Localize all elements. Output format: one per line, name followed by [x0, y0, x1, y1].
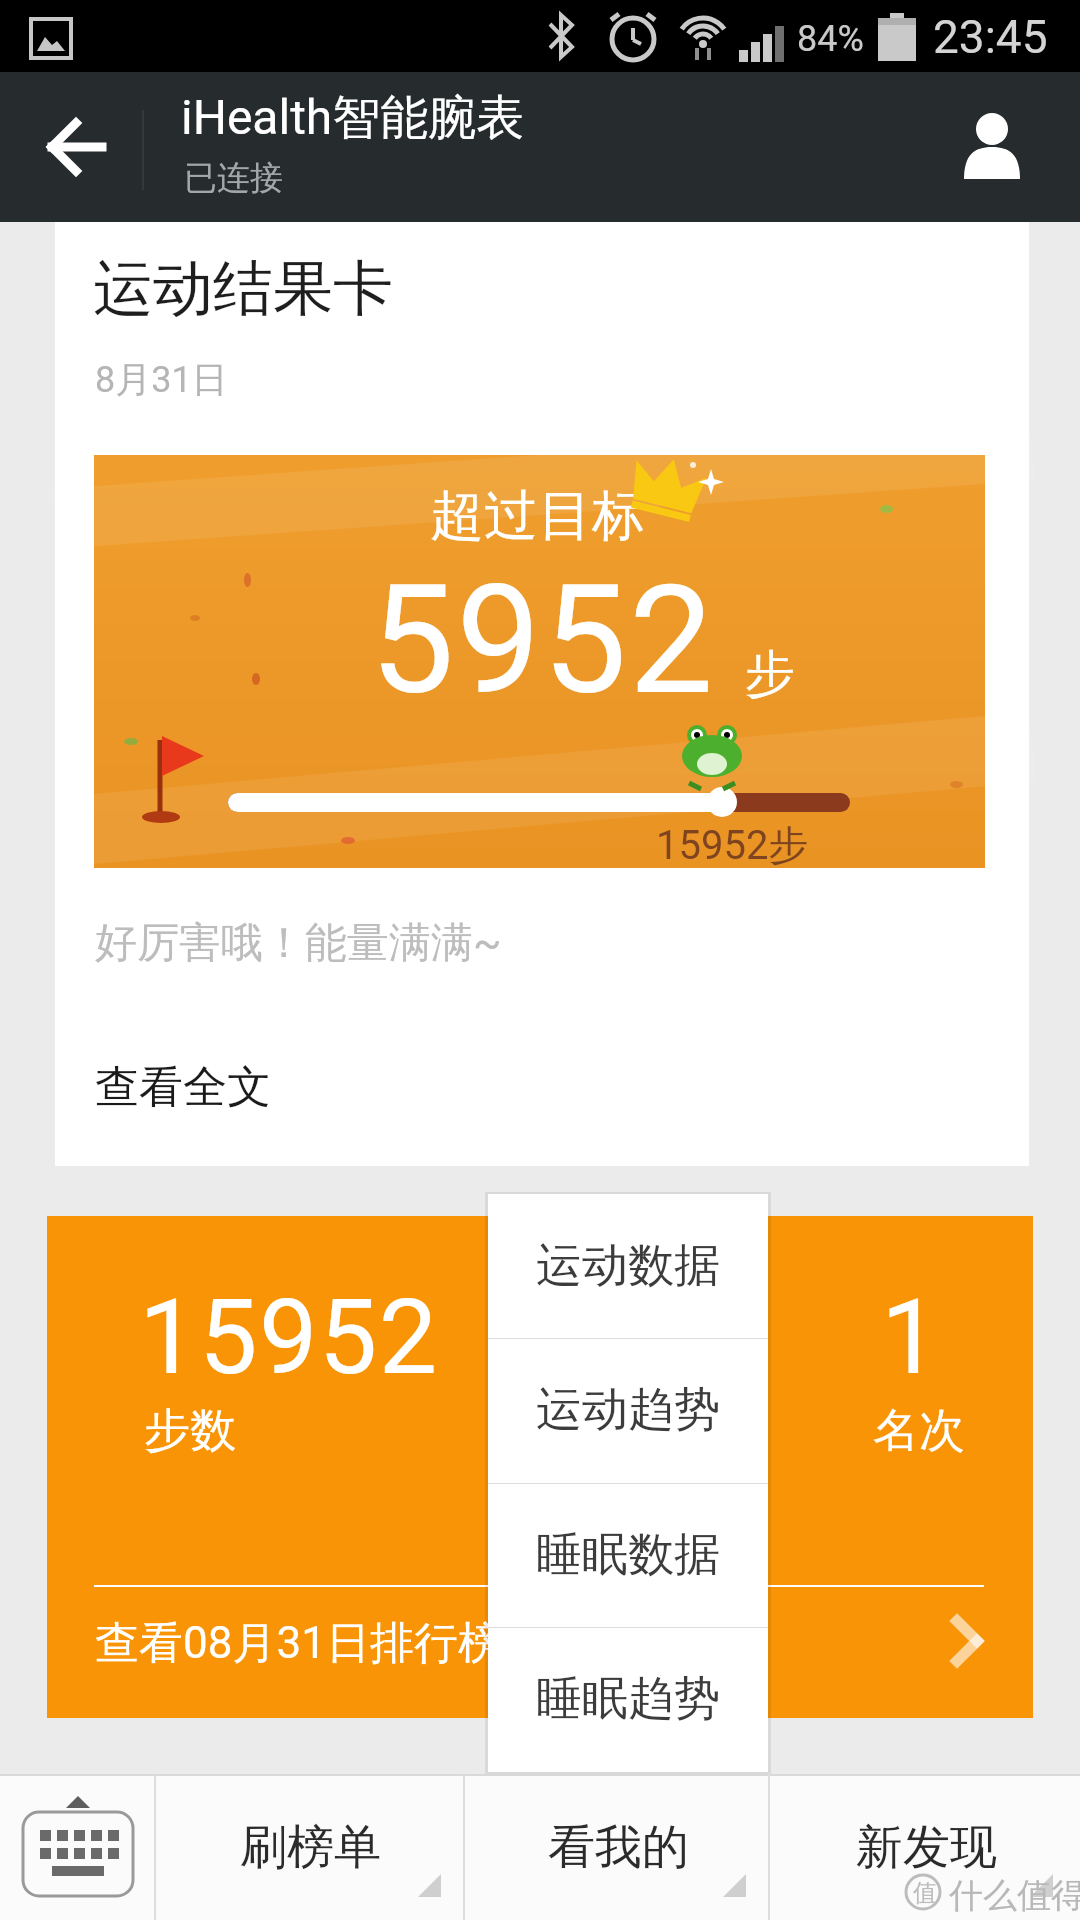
- staticText: 值: [913, 1878, 937, 1908]
- staticText: 5952: [370, 553, 716, 729]
- staticText: 看我的: [548, 1818, 689, 1877]
- staticText: 运动结果卡: [93, 251, 393, 327]
- button[interactable]: 15952: [47, 1216, 1033, 1718]
- button[interactable]: 运动数据: [488, 1194, 768, 1338]
- staticText: 步数: [144, 1402, 236, 1460]
- button[interactable]: [0, 1774, 154, 1920]
- staticText: 已连接: [184, 157, 283, 199]
- staticText: 84%: [797, 18, 864, 60]
- button[interactable]: 睡眠数据: [488, 1483, 768, 1627]
- staticText: 15952步: [656, 820, 809, 870]
- button[interactable]: 新发现: [770, 1774, 1080, 1920]
- button[interactable]: 运动趋势: [488, 1338, 768, 1482]
- staticText: 名次: [873, 1402, 965, 1460]
- button[interactable]: 睡眠趋势: [488, 1627, 768, 1771]
- button[interactable]: [30, 112, 120, 182]
- staticText: 查看全文: [95, 1060, 271, 1115]
- staticText: 好厉害哦！能量满满~: [95, 917, 502, 970]
- staticText: 查看08月31日排行榜: [95, 1616, 502, 1671]
- button[interactable]: 刷榜单: [155, 1774, 465, 1920]
- staticText: 运动数据: [536, 1237, 720, 1295]
- staticText: 超过目标: [430, 482, 646, 550]
- staticText: 运动趋势: [536, 1381, 720, 1439]
- staticText: 23:45: [933, 10, 1048, 64]
- button[interactable]: 看我的: [465, 1774, 771, 1920]
- staticText: 8月31日: [95, 357, 228, 402]
- staticText: 1: [881, 1277, 940, 1399]
- staticText: iHealth智能腕表: [181, 88, 525, 148]
- staticText: 新发现: [856, 1818, 997, 1877]
- button[interactable]: 查看全文: [95, 1060, 315, 1120]
- staticText: 睡眠数据: [536, 1526, 720, 1584]
- staticText: 15952: [139, 1277, 439, 1399]
- staticText: 睡眠趋势: [536, 1670, 720, 1728]
- staticText: 步: [745, 643, 795, 706]
- staticText: 刷榜单: [240, 1818, 381, 1877]
- button[interactable]: [950, 107, 1034, 187]
- staticText: 什么值得买: [949, 1874, 1080, 1917]
